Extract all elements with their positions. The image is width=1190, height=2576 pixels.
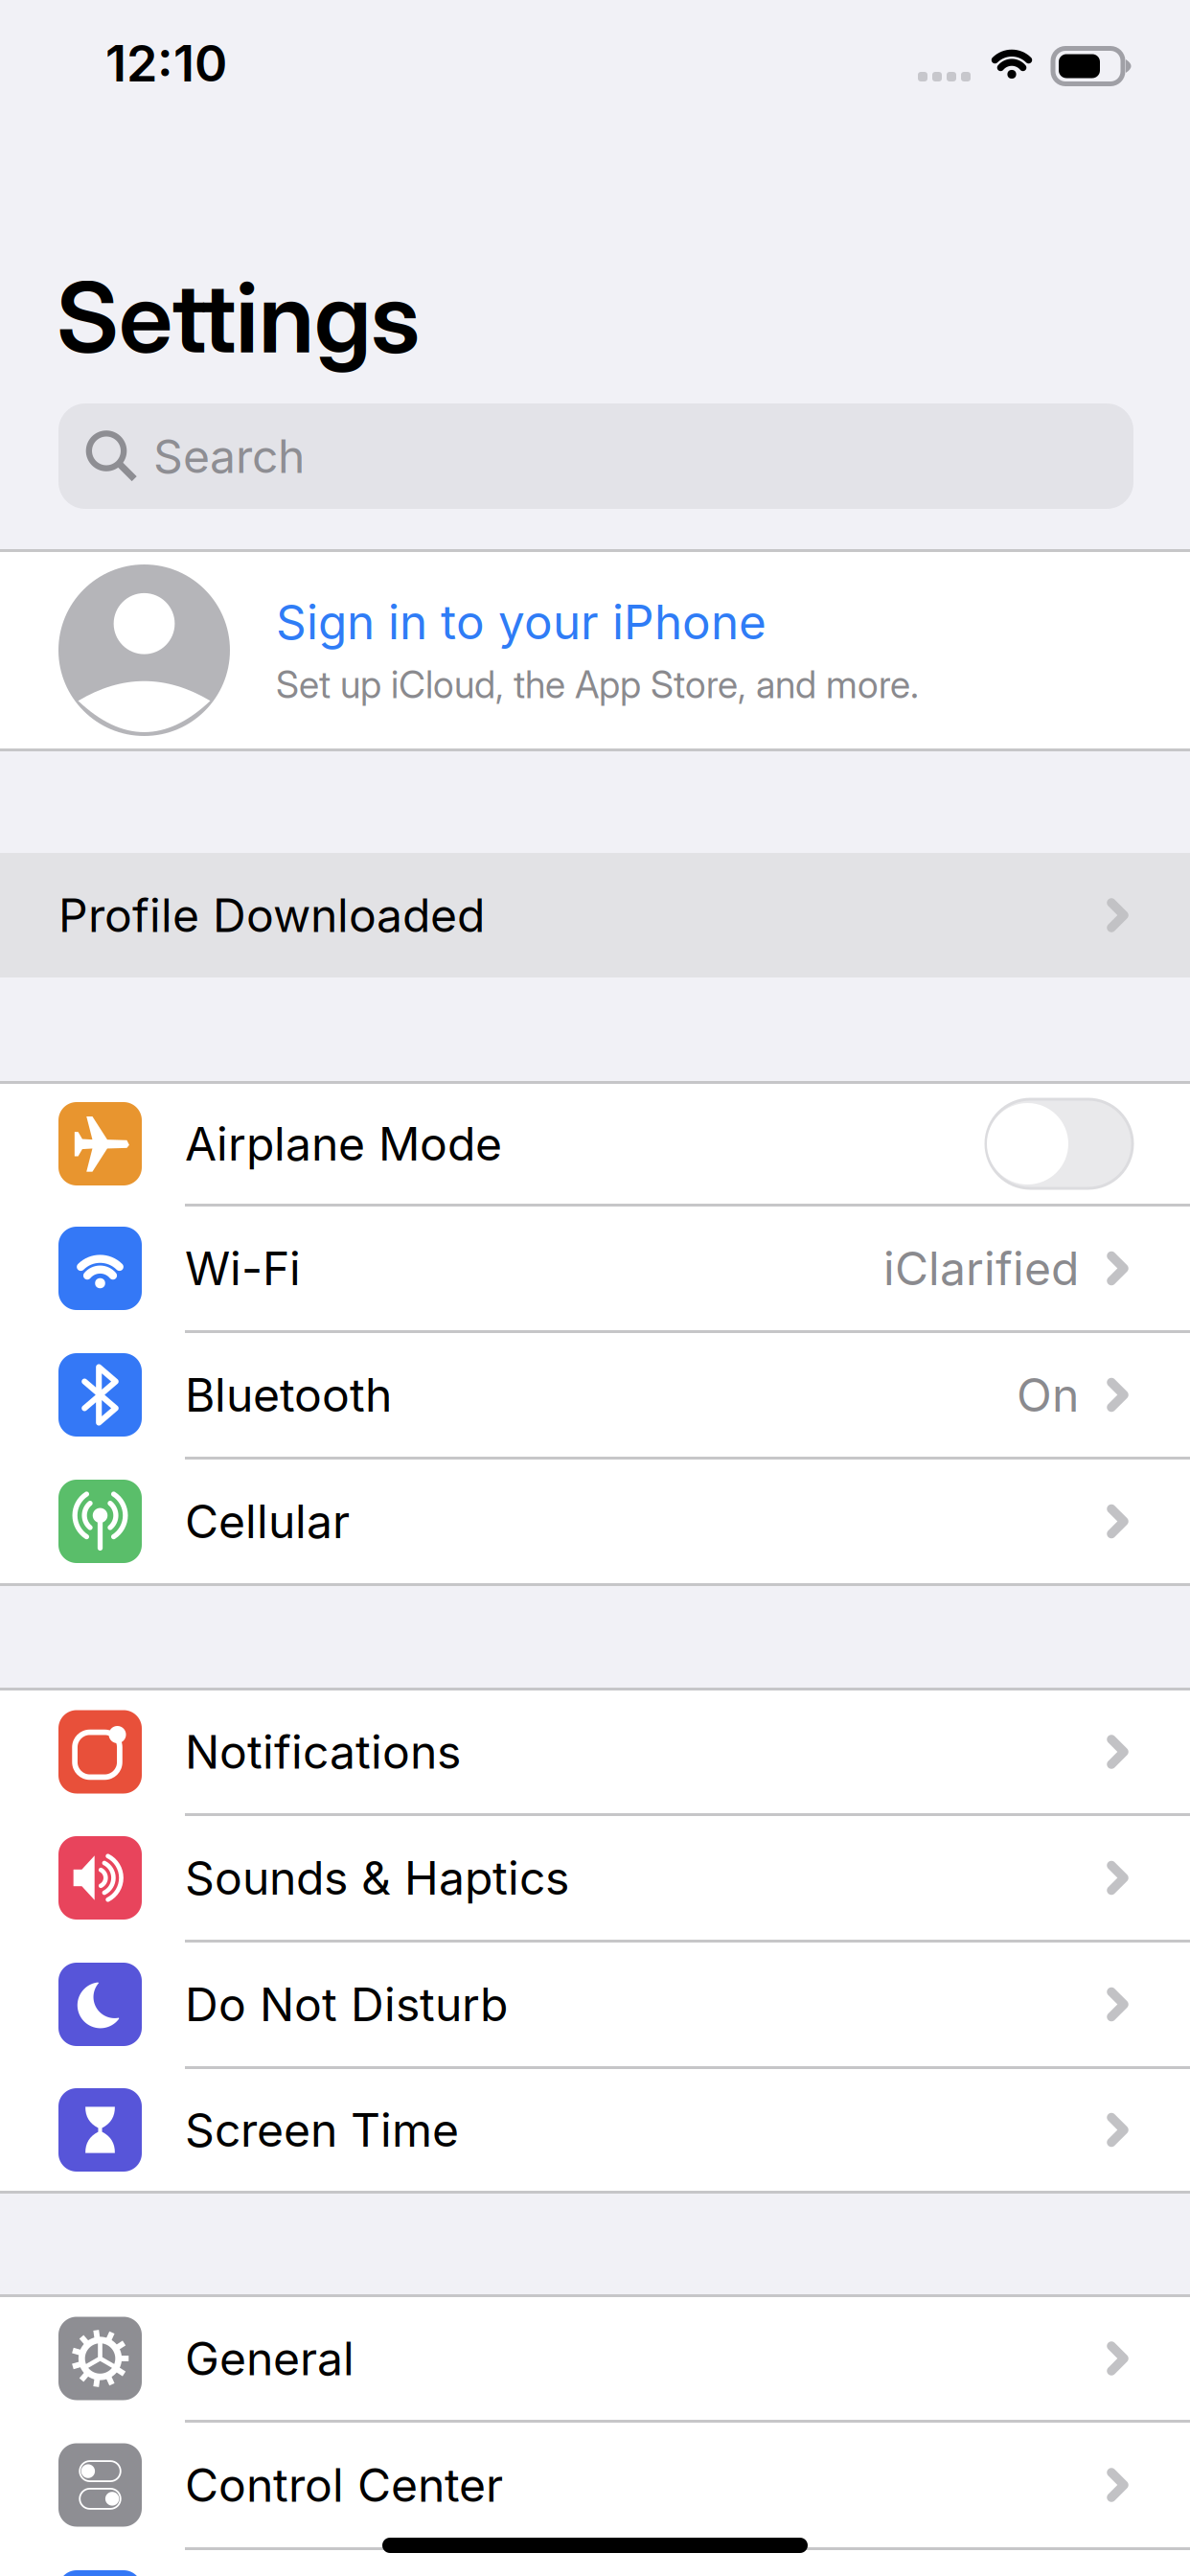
staticText: Airplane Mode (185, 1116, 502, 1172)
button[interactable]: Cellular (0, 1460, 1190, 1583)
staticText: Sign in to your iPhone (276, 593, 767, 651)
button[interactable]: Search (58, 403, 1133, 509)
staticText: Wi-Fi (185, 1241, 301, 1296)
staticText: Search (153, 428, 305, 484)
staticText: Settings (57, 258, 420, 376)
button[interactable]: Notifications (0, 1690, 1190, 1813)
staticText: Profile Downloaded (58, 887, 485, 943)
button[interactable]: Do Not Disturb (0, 1943, 1190, 2066)
staticText: General (185, 2331, 355, 2386)
button[interactable]: Airplane Mode (0, 1084, 1190, 1204)
staticText: On (1017, 1367, 1079, 1423)
button[interactable]: Screen Time (0, 2069, 1190, 2191)
staticText: Control Center (185, 2457, 503, 2513)
button[interactable]: Wi-Fi (0, 1207, 1190, 1330)
button[interactable]: Control Center (0, 2423, 1190, 2547)
staticText: Do Not Disturb (185, 1977, 508, 2032)
staticText: iClarified (883, 1241, 1079, 1296)
button[interactable]: General (0, 2297, 1190, 2420)
button[interactable]: Bluetooth (0, 1333, 1190, 1457)
button[interactable]: Sign in to your iPhone (0, 552, 1190, 748)
staticText: Sounds & Haptics (185, 1850, 569, 1906)
staticText: Cellular (185, 1494, 350, 1549)
staticText: Set up iCloud, the App Store, and more. (276, 662, 919, 707)
staticText: Screen Time (185, 2102, 459, 2158)
button[interactable]: Profile Downloaded (0, 853, 1190, 977)
button[interactable]: Sounds & Haptics (0, 1816, 1190, 1940)
button[interactable]: Display & Brightness (0, 2550, 1190, 2576)
staticText: Bluetooth (185, 1367, 392, 1423)
staticText: Notifications (185, 1724, 461, 1780)
staticText: 12:10 (105, 33, 227, 93)
